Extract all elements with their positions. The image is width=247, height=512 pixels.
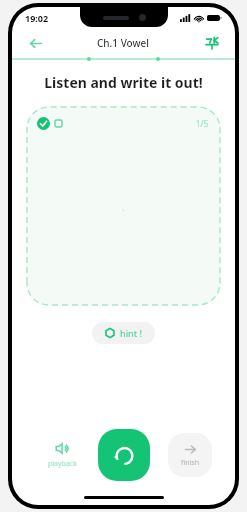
staticText: playback xyxy=(48,459,77,469)
button[interactable]: Back xyxy=(24,32,46,54)
staticText: 1/5 xyxy=(196,118,209,129)
button[interactable]: playback xyxy=(44,437,81,473)
button[interactable]: Keyboard xyxy=(201,32,223,54)
staticText: Ch.1 Vowel xyxy=(97,36,150,50)
button[interactable]: finish xyxy=(168,433,212,477)
staticText: finish xyxy=(181,458,200,468)
staticText: hint ! xyxy=(120,327,142,339)
button[interactable]: Writing area xyxy=(26,106,221,306)
staticText: Listen and write it out! xyxy=(12,73,235,92)
staticText: 19:02 xyxy=(25,12,49,24)
button[interactable]: hint ! xyxy=(92,322,155,344)
button[interactable]: Redo xyxy=(98,429,150,481)
